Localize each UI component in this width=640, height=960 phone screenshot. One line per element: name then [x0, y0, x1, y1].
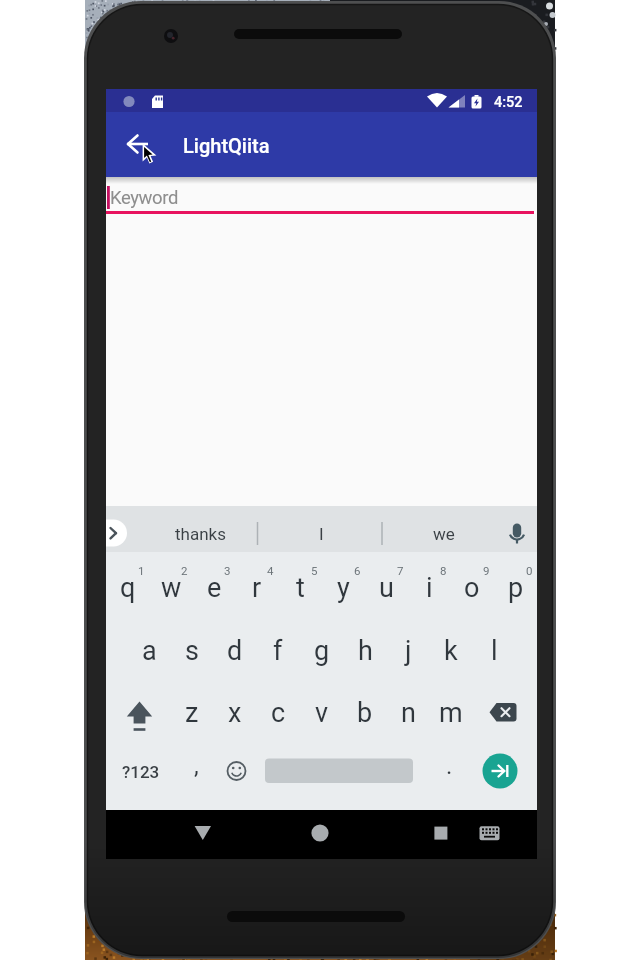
button[interactable]: [112, 122, 156, 166]
button[interactable]: g: [301, 623, 343, 679]
staticText: Keyword: [110, 187, 179, 209]
button[interactable]: u: [365, 560, 407, 616]
button[interactable]: [265, 758, 413, 783]
staticText: 1: [138, 564, 145, 577]
button[interactable]: m: [430, 685, 472, 741]
staticText: l: [491, 635, 498, 667]
staticText: 0: [526, 564, 533, 577]
button[interactable]: t: [279, 560, 321, 616]
button[interactable]: k: [430, 623, 472, 679]
staticText: w: [161, 572, 182, 604]
button[interactable]: s: [171, 623, 213, 679]
staticText: i: [426, 572, 433, 604]
staticText: I: [319, 524, 324, 544]
button[interactable]: x: [214, 685, 256, 741]
staticText: r: [252, 572, 262, 604]
button[interactable]: d: [214, 623, 256, 679]
button[interactable]: [488, 694, 520, 730]
staticText: y: [337, 572, 350, 604]
button[interactable]: I: [266, 511, 376, 557]
button[interactable]: [186, 815, 220, 849]
staticText: u: [379, 572, 394, 604]
button[interactable]: [500, 512, 534, 546]
button[interactable]: [482, 753, 518, 789]
staticText: h: [358, 635, 373, 667]
staticText: m: [439, 697, 463, 729]
staticText: v: [315, 697, 329, 729]
staticText: ,: [194, 752, 199, 780]
staticText: 4:52: [494, 94, 523, 111]
button[interactable]: a: [128, 623, 170, 679]
button[interactable]: b: [344, 685, 386, 741]
staticText: .: [446, 752, 453, 780]
button[interactable]: [220, 753, 254, 789]
staticText: b: [357, 697, 373, 729]
staticText: s: [185, 635, 199, 667]
staticText: 6: [354, 564, 361, 577]
button[interactable]: [473, 815, 507, 849]
staticText: o: [464, 572, 480, 604]
staticText: thanks: [175, 524, 226, 544]
staticText: x: [228, 697, 242, 729]
button[interactable]: v: [301, 685, 343, 741]
staticText: c: [271, 697, 286, 729]
button[interactable]: [106, 180, 537, 220]
button[interactable]: [303, 815, 337, 849]
staticText: 7: [397, 564, 404, 577]
staticText: ?123: [122, 762, 160, 782]
button[interactable]: ?123: [113, 747, 169, 797]
button[interactable]: n: [387, 685, 429, 741]
button[interactable]: l: [473, 623, 515, 679]
button[interactable]: i: [408, 560, 450, 616]
staticText: p: [508, 572, 524, 604]
button[interactable]: j: [387, 623, 429, 679]
staticText: LightQiita: [183, 134, 270, 157]
button[interactable]: e: [193, 560, 235, 616]
staticText: q: [120, 572, 136, 604]
staticText: z: [185, 697, 199, 729]
staticText: e: [207, 572, 222, 604]
button[interactable]: thanks: [140, 511, 260, 557]
button[interactable]: [424, 815, 458, 849]
staticText: 3: [224, 564, 231, 577]
button[interactable]: we: [389, 511, 499, 557]
button[interactable]: o: [451, 560, 493, 616]
staticText: f: [273, 635, 283, 667]
staticText: k: [444, 635, 458, 667]
button[interactable]: p: [495, 560, 537, 616]
button[interactable]: h: [344, 623, 386, 679]
button[interactable]: y: [322, 560, 364, 616]
staticText: 2: [181, 564, 188, 577]
button[interactable]: [125, 694, 155, 730]
button[interactable]: w: [150, 560, 192, 616]
staticText: we: [433, 524, 455, 544]
button[interactable]: f: [257, 623, 299, 679]
staticText: 9: [483, 564, 490, 577]
button[interactable]: z: [171, 685, 213, 741]
staticText: a: [142, 635, 157, 667]
staticText: n: [401, 697, 416, 729]
button[interactable]: r: [236, 560, 278, 616]
staticText: 4: [267, 564, 274, 577]
staticText: 5: [311, 564, 318, 577]
button[interactable]: .: [431, 741, 467, 791]
button[interactable]: c: [257, 685, 299, 741]
button[interactable]: q: [107, 560, 149, 616]
staticText: g: [314, 635, 330, 667]
button[interactable]: ,: [178, 741, 214, 791]
staticText: 8: [440, 564, 447, 577]
staticText: t: [296, 572, 305, 604]
staticText: d: [227, 635, 243, 667]
staticText: j: [405, 635, 412, 667]
